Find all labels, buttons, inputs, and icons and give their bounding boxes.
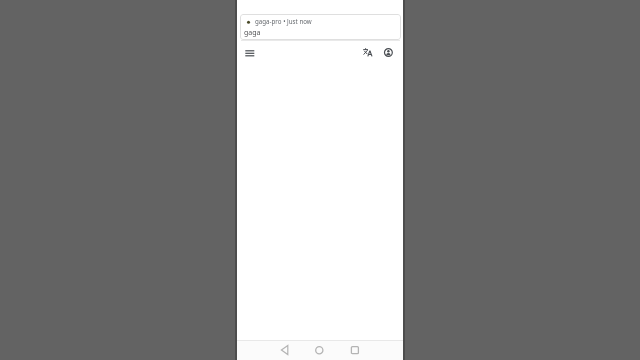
staticText: gaga xyxy=(244,28,261,38)
button[interactable] xyxy=(359,44,376,61)
button[interactable] xyxy=(312,342,327,358)
button[interactable] xyxy=(347,342,363,358)
button[interactable]: gaga-pro • Just now xyxy=(240,14,401,40)
button[interactable] xyxy=(241,44,259,61)
button[interactable] xyxy=(380,44,397,61)
button[interactable] xyxy=(277,342,292,358)
staticText: gaga-pro • Just now xyxy=(255,17,312,25)
